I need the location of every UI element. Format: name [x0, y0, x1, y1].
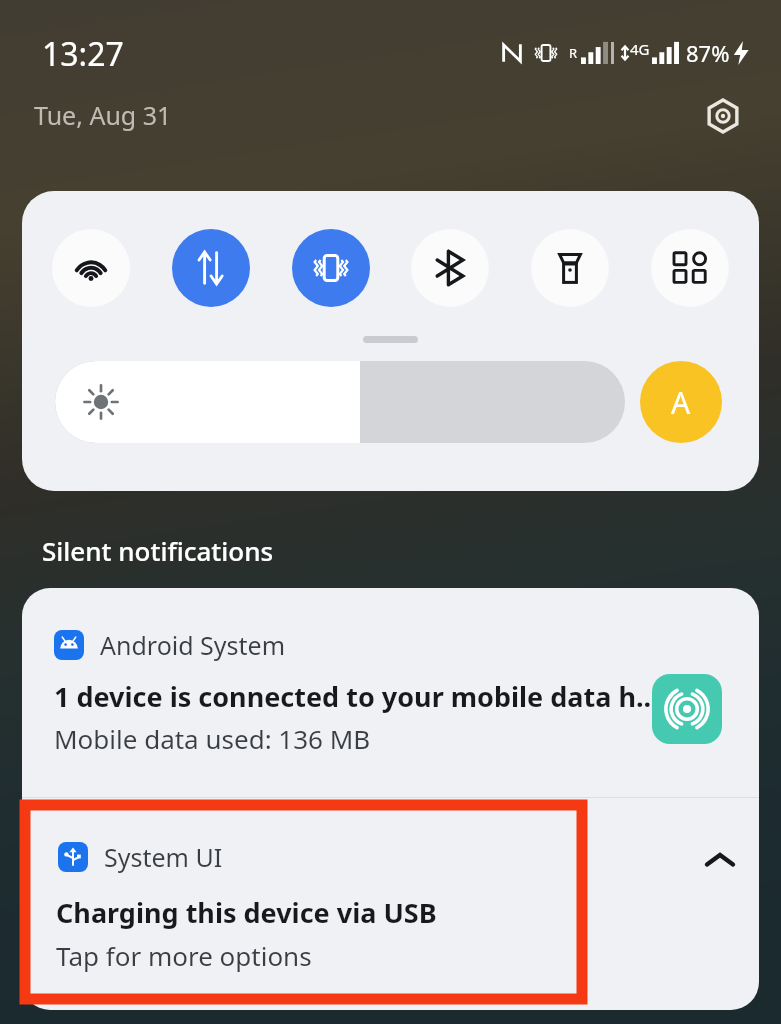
staticText: Android System — [100, 628, 286, 662]
staticText: System UI — [104, 840, 223, 874]
staticText: 4G — [630, 39, 650, 59]
staticText: Charging this device via USB — [56, 894, 437, 931]
button[interactable]: A — [640, 361, 722, 443]
staticText: Silent notifications — [42, 533, 274, 568]
button[interactable]: Brightness — [55, 361, 625, 443]
button[interactable]: Quick setting — [531, 229, 609, 307]
button[interactable]: Quick setting — [651, 229, 729, 307]
button[interactable]: Quick setting — [52, 229, 130, 307]
button[interactable]: System UI — [22, 798, 759, 1010]
staticText: Mobile data used: 136 MB — [54, 721, 371, 756]
button[interactable]: Quick setting — [172, 229, 250, 307]
button[interactable]: Quick setting — [292, 229, 370, 307]
staticText: 87% — [686, 38, 730, 68]
staticText: R — [569, 44, 578, 62]
staticText: 13:27 — [42, 32, 124, 76]
staticText: Tap for more options — [56, 938, 312, 973]
staticText: Tue, Aug 31 — [34, 98, 172, 132]
staticText: 1 device is connected to your mobile dat… — [54, 678, 652, 715]
button[interactable]: Settings — [701, 94, 745, 138]
staticText: A — [671, 382, 691, 423]
button[interactable]: Collapse — [698, 838, 742, 882]
button[interactable]: Android System — [22, 588, 759, 797]
button[interactable]: Quick setting — [411, 229, 489, 307]
